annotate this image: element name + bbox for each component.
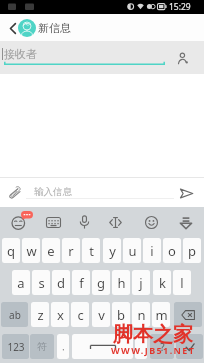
button[interactable]: o (163, 238, 181, 263)
button[interactable]: d (52, 270, 70, 295)
button[interactable]: v (92, 302, 110, 327)
button[interactable]: Voice input (71, 209, 97, 235)
staticText: f (79, 274, 84, 292)
staticText: u (128, 242, 137, 260)
staticText: 。 (137, 342, 145, 352)
button[interactable]: 。 (135, 334, 147, 359)
staticText: 新信息 (38, 21, 71, 35)
button[interactable]: e (42, 238, 60, 263)
button[interactable]: y (103, 238, 121, 263)
button[interactable]: ? (150, 334, 174, 359)
staticText: l (180, 274, 184, 292)
staticText: e (47, 242, 55, 260)
staticText: h (117, 274, 126, 292)
button[interactable]: ab (1, 302, 28, 327)
staticText: ab (9, 308, 21, 322)
staticText: p (188, 242, 196, 260)
button[interactable]: w (22, 238, 40, 263)
staticText: g (97, 274, 105, 292)
button[interactable]: Back (3, 18, 23, 38)
button[interactable]: t (82, 238, 100, 263)
staticText: 15:29 (169, 1, 191, 13)
button[interactable]: i (143, 238, 161, 263)
button[interactable]: l (173, 270, 191, 295)
button[interactable]: u (123, 238, 141, 263)
button[interactable]: ， (57, 334, 69, 359)
button[interactable]: x (51, 302, 69, 327)
staticText: j (139, 274, 143, 292)
button[interactable]: g (92, 270, 110, 295)
staticText: i (150, 242, 154, 260)
staticText: s (38, 274, 45, 292)
button[interactable]: j (132, 270, 150, 295)
button[interactable]: s (32, 270, 50, 295)
staticText: 符 (37, 340, 47, 353)
button[interactable]: p (183, 238, 201, 263)
staticText: ? (160, 340, 165, 354)
button[interactable]: Emoji (138, 209, 164, 235)
staticText: t (89, 242, 94, 260)
staticText: 接收者 (4, 47, 37, 61)
button[interactable]: Attach file (2, 182, 24, 204)
button[interactable]: n (132, 302, 150, 327)
button[interactable]: k (153, 270, 171, 295)
button[interactable]: h (112, 270, 130, 295)
button[interactable]: Add recipient (172, 47, 194, 69)
button[interactable]: r (62, 238, 80, 263)
staticText: b (117, 306, 125, 324)
staticText: v (98, 306, 105, 324)
staticText: a (17, 274, 25, 292)
staticText: y (109, 242, 116, 260)
staticText: z (37, 306, 44, 324)
staticText: r (68, 242, 74, 260)
staticText: w (26, 242, 37, 260)
button[interactable]: Enter (176, 334, 203, 359)
button[interactable]: Hide keyboard (173, 209, 199, 235)
button[interactable]: q (2, 238, 20, 263)
staticText: ， (59, 342, 67, 352)
button[interactable]: m (152, 302, 170, 327)
button[interactable]: f (72, 270, 90, 295)
button[interactable]: Space (72, 334, 133, 359)
button[interactable]: Send (175, 182, 197, 204)
button[interactable]: a (12, 270, 30, 295)
button[interactable]: Stickers (6, 209, 32, 235)
staticText: k (159, 274, 166, 292)
button[interactable]: 符 (30, 334, 54, 359)
button[interactable]: Keyboard (40, 209, 66, 235)
button[interactable]: Handwriting (102, 209, 128, 235)
button[interactable]: z (31, 302, 49, 327)
staticText: o (168, 242, 176, 260)
staticText: WWW.JB51.NET (111, 344, 196, 356)
button[interactable]: b (112, 302, 130, 327)
staticText: 123 (7, 340, 25, 354)
staticText: d (57, 274, 65, 292)
staticText: 脚本之家 (113, 322, 193, 347)
staticText: 输入信息 (34, 186, 72, 198)
staticText: c (77, 306, 84, 324)
staticText: n (137, 306, 146, 324)
button[interactable]: 123 (2, 334, 29, 359)
staticText: m (155, 306, 168, 324)
staticText: x (57, 306, 64, 324)
button[interactable]: c (71, 302, 89, 327)
button[interactable]: Backspace (174, 302, 202, 327)
staticText: q (7, 242, 15, 260)
